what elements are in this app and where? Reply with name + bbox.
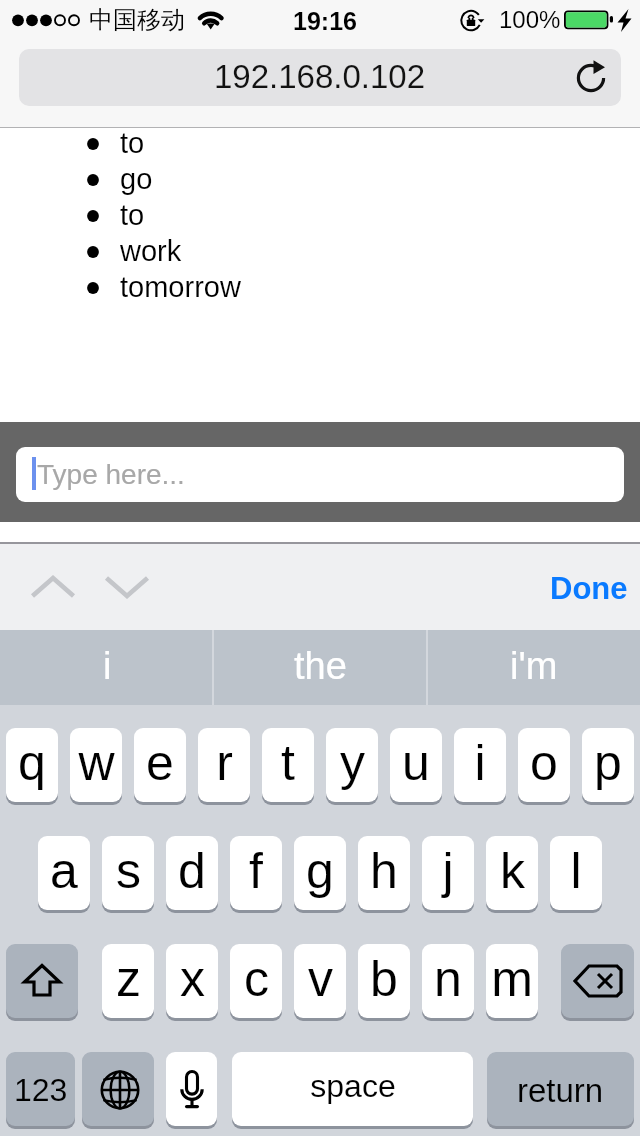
staticText: return — [517, 1072, 604, 1109]
staticText: x — [180, 951, 205, 1007]
button[interactable]: 123 — [6, 1052, 75, 1126]
staticText: 100% — [499, 6, 561, 33]
button[interactable]: i — [0, 630, 214, 705]
staticText: r — [216, 735, 233, 791]
staticText: z — [116, 951, 141, 1007]
button[interactable]: t — [262, 728, 314, 802]
staticText: m — [491, 951, 533, 1007]
button[interactable]: h — [358, 836, 410, 910]
button[interactable]: Dictate — [166, 1052, 217, 1126]
staticText: i — [474, 735, 486, 791]
button[interactable]: Next field — [94, 558, 160, 616]
staticText: p — [594, 735, 622, 791]
button[interactable]: z — [102, 944, 154, 1018]
staticText: 19:16 — [293, 7, 357, 35]
staticText: f — [249, 843, 263, 899]
button[interactable]: q — [6, 728, 58, 802]
button[interactable]: f — [230, 836, 282, 910]
button[interactable]: m — [486, 944, 538, 1018]
staticText: to — [120, 127, 145, 159]
button[interactable]: p — [582, 728, 634, 802]
staticText: 123 — [14, 1072, 68, 1108]
staticText: s — [116, 843, 141, 899]
staticText: t — [281, 735, 295, 791]
staticText: w — [78, 735, 115, 791]
button[interactable]: Previous field — [20, 558, 86, 616]
staticText: g — [306, 843, 334, 899]
button[interactable]: i'm — [427, 630, 640, 705]
staticText: space — [310, 1068, 396, 1104]
staticText: b — [370, 951, 398, 1007]
button[interactable]: Done — [532, 544, 640, 630]
staticText: d — [178, 843, 206, 899]
button[interactable]: s — [102, 836, 154, 910]
staticText: the — [294, 645, 347, 687]
button[interactable]: i — [454, 728, 506, 802]
button[interactable]: b — [358, 944, 410, 1018]
staticText: go — [120, 163, 153, 195]
button[interactable]: r — [198, 728, 250, 802]
button[interactable]: Type here... — [16, 447, 624, 502]
button[interactable]: Next keyboard — [82, 1052, 154, 1126]
button[interactable]: e — [134, 728, 186, 802]
staticText: 中国移动 — [89, 5, 185, 35]
button[interactable]: n — [422, 944, 474, 1018]
staticText: tomorrow — [120, 271, 241, 303]
button[interactable]: space — [232, 1052, 473, 1126]
button[interactable]: c — [230, 944, 282, 1018]
staticText: c — [244, 951, 269, 1007]
staticText: o — [530, 735, 558, 791]
staticText: u — [402, 735, 430, 791]
staticText: i — [103, 645, 112, 687]
button[interactable]: return — [487, 1052, 634, 1126]
button[interactable]: d — [166, 836, 218, 910]
staticText: j — [442, 843, 454, 899]
button[interactable]: l — [550, 836, 602, 910]
staticText: y — [340, 735, 365, 791]
staticText: h — [370, 843, 398, 899]
staticText: i'm — [510, 645, 558, 687]
staticText: work — [120, 235, 182, 267]
staticText: e — [146, 735, 174, 791]
staticText: to — [120, 199, 145, 231]
staticText: n — [434, 951, 462, 1007]
button[interactable]: k — [486, 836, 538, 910]
button[interactable]: 192.168.0.102 — [19, 49, 621, 106]
button[interactable]: Reload — [561, 49, 621, 106]
button[interactable]: Backspace — [561, 944, 634, 1018]
button[interactable]: g — [294, 836, 346, 910]
staticText: 192.168.0.102 — [214, 58, 426, 95]
button[interactable]: a — [38, 836, 90, 910]
button[interactable]: w — [70, 728, 122, 802]
staticText: Type here... — [37, 459, 185, 490]
button[interactable]: u — [390, 728, 442, 802]
staticText: v — [308, 951, 333, 1007]
button[interactable]: Shift — [6, 944, 78, 1018]
button[interactable]: y — [326, 728, 378, 802]
button[interactable]: x — [166, 944, 218, 1018]
button[interactable]: v — [294, 944, 346, 1018]
staticText: k — [500, 843, 525, 899]
button[interactable]: j — [422, 836, 474, 910]
staticText: a — [50, 843, 78, 899]
staticText: q — [18, 735, 46, 791]
button[interactable]: o — [518, 728, 570, 802]
staticText: l — [570, 843, 582, 899]
staticText: Done — [550, 571, 628, 606]
button[interactable]: the — [214, 630, 427, 705]
